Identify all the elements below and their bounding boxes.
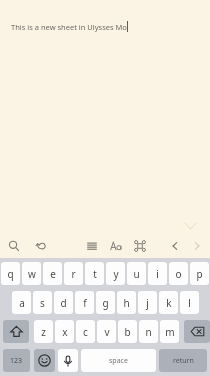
staticText: t [93, 267, 97, 281]
button[interactable]: Backspace [184, 320, 210, 343]
staticText: a [19, 296, 25, 310]
staticText: This is a new sheet in Ulysses Mo [11, 22, 127, 32]
button[interactable]: d [54, 291, 73, 314]
button[interactable]: p [190, 262, 209, 285]
staticText: u [133, 267, 140, 281]
button[interactable]: i [148, 262, 167, 285]
button[interactable]: Lists [80, 234, 104, 258]
button[interactable]: t [85, 262, 104, 285]
button[interactable]: u [127, 262, 146, 285]
button[interactable]: o [169, 262, 188, 285]
staticText: d [60, 296, 67, 310]
staticText: x [62, 325, 68, 339]
staticText: z [41, 325, 46, 339]
button[interactable]: v [97, 320, 116, 343]
button[interactable]: Text style [104, 234, 128, 258]
button[interactable]: q [1, 262, 20, 285]
button[interactable]: j [138, 291, 157, 314]
staticText: return [173, 356, 194, 366]
button[interactable]: Next [186, 234, 208, 258]
button[interactable]: w [22, 262, 41, 285]
staticText: r [71, 267, 76, 281]
button[interactable]: s [33, 291, 52, 314]
button[interactable]: b [118, 320, 137, 343]
staticText: f [83, 296, 87, 310]
button[interactable]: x [55, 320, 74, 343]
staticText: h [123, 296, 130, 310]
staticText: g [102, 296, 109, 310]
button[interactable]: Undo [28, 234, 54, 258]
button[interactable]: 123 [3, 349, 30, 372]
button[interactable]: This is a new sheet in Ulysses Mo [0, 0, 210, 234]
staticText: 123 [10, 356, 23, 366]
button[interactable]: f [75, 291, 94, 314]
staticText: i [156, 267, 159, 281]
button[interactable]: Dictation [58, 349, 78, 372]
staticText: o [175, 267, 182, 281]
button[interactable]: h [117, 291, 136, 314]
button[interactable]: space [81, 349, 156, 372]
staticText: j [146, 296, 149, 310]
staticText: space [109, 356, 128, 366]
button[interactable]: return [159, 349, 207, 372]
button[interactable]: Shift [3, 320, 29, 343]
button[interactable]: Previous [164, 234, 186, 258]
button[interactable]: c [76, 320, 95, 343]
staticText: k [166, 296, 172, 310]
button[interactable]: r [64, 262, 83, 285]
staticText: p [196, 267, 203, 281]
staticText: w [28, 267, 36, 281]
button[interactable]: y [106, 262, 125, 285]
staticText: s [40, 296, 45, 310]
button[interactable]: l [180, 291, 199, 314]
button[interactable]: m [160, 320, 179, 343]
staticText: l [188, 296, 191, 310]
button[interactable]: Emoji [34, 349, 55, 372]
button[interactable]: n [139, 320, 158, 343]
staticText: c [83, 325, 88, 339]
staticText: n [145, 325, 152, 339]
staticText: y [113, 267, 119, 281]
button[interactable]: z [34, 320, 53, 343]
button[interactable]: Markup [128, 234, 152, 258]
staticText: m [165, 325, 175, 339]
button[interactable]: a [12, 291, 31, 314]
staticText: e [50, 267, 56, 281]
button[interactable]: e [43, 262, 62, 285]
button[interactable]: g [96, 291, 115, 314]
staticText: b [124, 325, 131, 339]
button[interactable]: Search [0, 234, 28, 258]
button[interactable]: k [159, 291, 178, 314]
staticText: q [7, 267, 14, 281]
staticText: v [104, 325, 110, 339]
